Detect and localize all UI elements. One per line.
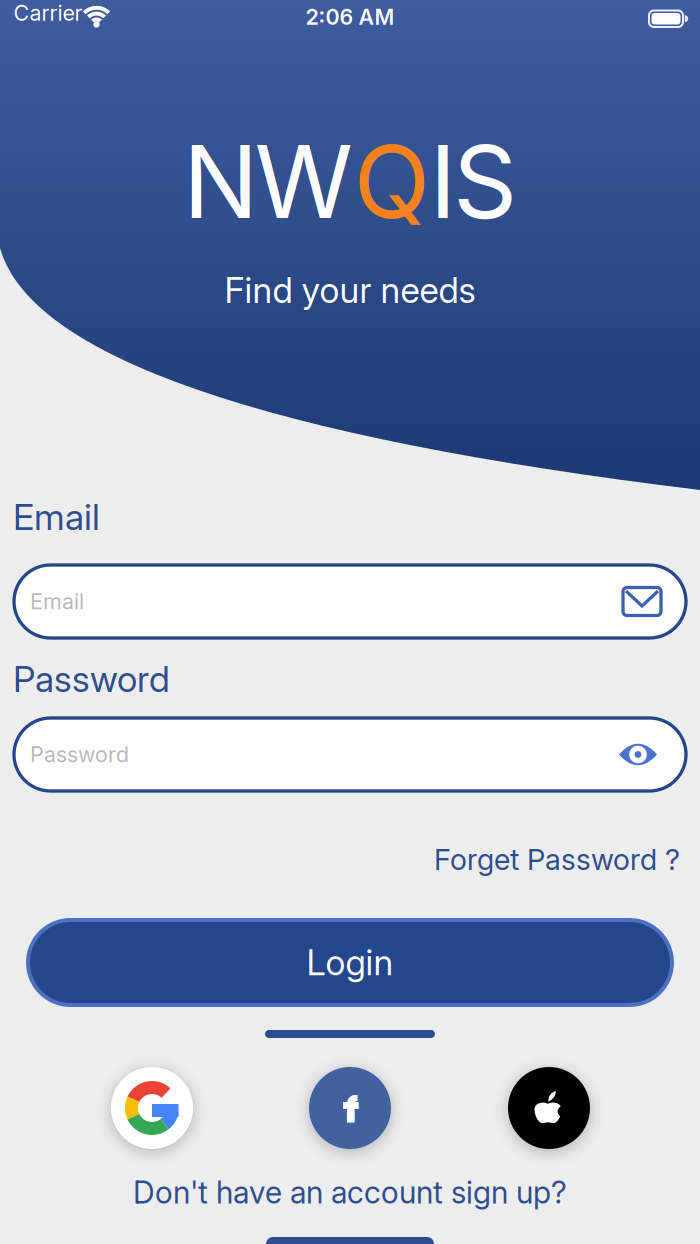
staticText: Don't have an account sign up? — [133, 1174, 567, 1211]
button[interactable]: Login — [28, 920, 672, 1005]
staticText: NW — [183, 121, 353, 242]
staticText: Carrier — [13, 0, 82, 26]
staticText: Find your needs — [224, 269, 475, 311]
staticText: 2:06 AM — [305, 4, 394, 30]
button[interactable]: Don't have an account sign up? — [133, 1174, 567, 1211]
button[interactable]: Password — [14, 718, 686, 791]
staticText: Q — [353, 121, 429, 242]
staticText: Email — [13, 495, 100, 539]
staticText: IS — [429, 121, 517, 242]
staticText: Login — [306, 941, 393, 984]
staticText: Password — [13, 657, 170, 701]
button[interactable]: Sign in with Apple — [508, 1067, 590, 1149]
button[interactable]: Email — [14, 565, 686, 638]
button[interactable]: Sign in with Facebook — [309, 1067, 391, 1149]
button[interactable]: Show password — [619, 741, 657, 767]
button[interactable]: Sign in with Google — [111, 1067, 193, 1149]
staticText: Password — [30, 741, 129, 767]
staticText: Forget Password ? — [434, 842, 680, 877]
staticText: Email — [30, 588, 84, 614]
button[interactable]: Forget Password ? — [434, 842, 680, 877]
